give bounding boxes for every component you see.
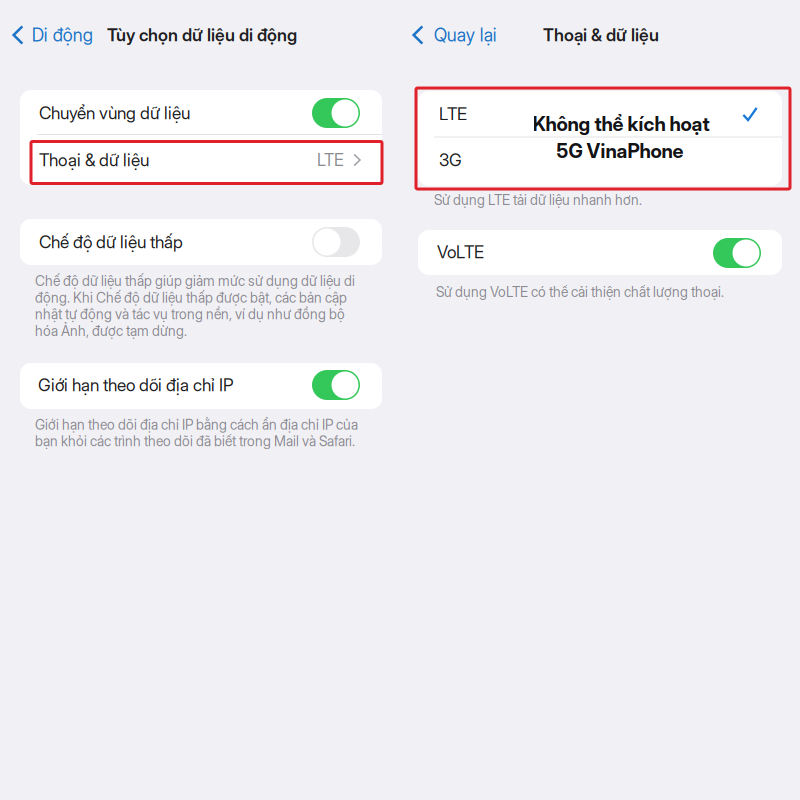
staticText: LTE — [317, 150, 344, 170]
button[interactable]: Chuyển vùng dữ liệu — [312, 98, 360, 128]
staticText: Giới hạn theo dõi địa chỉ IP — [38, 375, 234, 395]
button[interactable]: 3G — [418, 140, 782, 184]
staticText: Không thể kích hoạt — [532, 112, 709, 136]
staticText: Thoại & dữ liệu — [39, 150, 149, 170]
button[interactable]: LTE — [418, 91, 782, 138]
staticText: Chế độ dữ liệu thấp giúp giảm mức sử dụn… — [35, 273, 355, 339]
staticText: Sử dụng VoLTE có thể cải thiện chất lượn… — [436, 284, 724, 300]
staticText: Chuyển vùng dữ liệu — [39, 103, 190, 123]
staticText: Tùy chọn dữ liệu di động — [107, 24, 297, 45]
staticText: Sử dụng LTE tải dữ liệu nhanh hơn. — [434, 192, 642, 208]
button[interactable]: Chuyển vùng dữ liệu — [20, 90, 382, 136]
staticText: Chế độ dữ liệu thấp — [39, 232, 183, 252]
staticText: Quay lại — [434, 24, 497, 46]
button[interactable]: Di động — [0, 17, 101, 53]
button[interactable]: Thoại & dữ liệu, LTE — [20, 137, 382, 182]
button[interactable]: VoLTE — [713, 238, 761, 268]
staticText: Giới hạn theo dõi địa chỉ IP bằng cách ẩ… — [35, 416, 358, 450]
button[interactable]: Quay lại — [399, 17, 505, 53]
staticText: 3G — [439, 150, 462, 170]
button[interactable]: Giới hạn theo dõi địa chỉ IP — [312, 370, 360, 400]
staticText: Di động — [32, 24, 93, 46]
staticText: VoLTE — [437, 242, 484, 262]
staticText: Thoại & dữ liệu — [543, 24, 659, 45]
staticText: 5G VinaPhone — [556, 139, 683, 163]
staticText: LTE — [439, 104, 467, 124]
button[interactable]: Chế độ dữ liệu thấp — [312, 227, 360, 257]
